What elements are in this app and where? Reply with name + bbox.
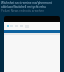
staticText: Polizei News rednotis arewhen [1,9,45,13]
staticText: aldeluxe/Switchell nn tycht rehu [1,5,46,9]
staticText: Wishnhet sect remine nw/phermont [1,1,52,5]
